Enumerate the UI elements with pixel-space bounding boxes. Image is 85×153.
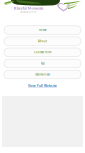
- button[interactable]: Testimonials: [4, 70, 81, 79]
- button[interactable]: Fees: [4, 59, 81, 68]
- staticText: Fees: [40, 62, 44, 65]
- button[interactable]: About: [4, 37, 81, 45]
- staticText: Testimonials: [35, 73, 50, 76]
- staticText: Contact Form: [34, 51, 51, 54]
- staticText: About: [38, 39, 47, 43]
- button[interactable]: View Full Website: [24, 79, 61, 91]
- staticText: Blissful Moments: [13, 6, 43, 10]
- staticText: View Full Website: [28, 84, 57, 88]
- staticText: wedding & event florist: [20, 10, 37, 13]
- button[interactable]: Home: [4, 26, 81, 34]
- button[interactable]: Contact Form: [4, 48, 81, 57]
- staticText: Home: [39, 28, 46, 32]
